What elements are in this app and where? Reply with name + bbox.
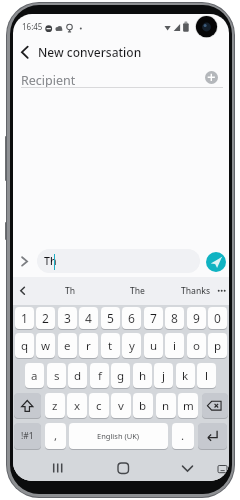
staticText: n: [162, 398, 170, 414]
button[interactable]: m: [178, 393, 198, 418]
staticText: u: [150, 338, 158, 354]
staticText: c: [96, 398, 102, 414]
staticText: Recipient: [21, 72, 76, 89]
button[interactable]: Th: [37, 249, 200, 273]
button[interactable]: o: [187, 333, 206, 358]
staticText: t: [108, 338, 113, 354]
button[interactable]: b: [133, 393, 153, 418]
staticText: x: [74, 398, 81, 414]
button[interactable]: d: [68, 363, 87, 388]
button[interactable]: z: [45, 393, 65, 418]
staticText: 9: [193, 310, 200, 326]
staticText: k: [182, 368, 189, 384]
staticText: q: [21, 338, 29, 354]
button[interactable]: u: [144, 333, 163, 358]
staticText: r: [86, 338, 91, 354]
button[interactable]: [202, 393, 228, 418]
staticText: .: [181, 428, 185, 444]
staticText: Th: [44, 254, 57, 268]
button[interactable]: 8: [165, 307, 184, 329]
button[interactable]: s: [47, 363, 66, 388]
staticText: New conversation: [38, 44, 142, 60]
button[interactable]: 0: [208, 307, 227, 329]
button[interactable]: g: [111, 363, 130, 388]
staticText: 8: [171, 310, 178, 326]
button[interactable]: f: [90, 363, 109, 388]
staticText: 5: [107, 310, 114, 326]
button[interactable]: k: [176, 363, 195, 388]
button[interactable]: y: [122, 333, 141, 358]
button[interactable]: p: [208, 333, 227, 358]
button[interactable]: .: [172, 423, 194, 449]
button[interactable]: c: [89, 393, 109, 418]
button[interactable]: j: [154, 363, 173, 388]
staticText: 1: [21, 310, 28, 326]
button[interactable]: 1: [15, 307, 34, 329]
button[interactable]: The: [97, 281, 177, 301]
staticText: z: [52, 398, 58, 414]
button[interactable]: 3: [58, 307, 77, 329]
staticText: o: [193, 338, 200, 354]
button[interactable]: Th: [30, 281, 110, 301]
staticText: d: [74, 368, 82, 384]
staticText: w: [41, 338, 51, 354]
staticText: 6: [128, 310, 135, 326]
button[interactable]: [69, 423, 168, 449]
button[interactable]: t: [101, 333, 120, 358]
button[interactable]: [46, 456, 74, 480]
button[interactable]: [206, 252, 226, 272]
button[interactable]: v: [111, 393, 131, 418]
button[interactable]: Thanks: [156, 281, 229, 301]
staticText: !#1: [21, 430, 34, 442]
button[interactable]: 6: [122, 307, 141, 329]
button[interactable]: 7: [144, 307, 163, 329]
staticText: Thanks: [181, 285, 211, 297]
button[interactable]: [198, 423, 227, 449]
button[interactable]: New conversation: [17, 43, 197, 60]
button[interactable]: 9: [187, 307, 206, 329]
button[interactable]: 4: [79, 307, 98, 329]
staticText: m: [183, 398, 194, 414]
button[interactable]: r: [79, 333, 98, 358]
staticText: s: [54, 368, 60, 384]
button[interactable]: w: [36, 333, 55, 358]
staticText: j: [162, 368, 165, 384]
button[interactable]: n: [156, 393, 176, 418]
button[interactable]: q: [15, 333, 34, 358]
staticText: 0: [214, 310, 221, 326]
staticText: 3: [64, 310, 71, 326]
staticText: 7: [150, 310, 157, 326]
staticText: 16:45: [22, 21, 43, 32]
button[interactable]: [109, 456, 137, 480]
button[interactable]: [14, 393, 41, 418]
button[interactable]: h: [133, 363, 152, 388]
staticText: i: [173, 338, 176, 354]
staticText: y: [129, 338, 135, 354]
staticText: ,: [54, 428, 58, 444]
button[interactable]: !#1: [14, 423, 41, 449]
staticText: English (UK): [97, 431, 140, 441]
staticText: 4: [85, 310, 92, 326]
button[interactable]: 5: [101, 307, 120, 329]
button[interactable]: l: [197, 363, 216, 388]
button[interactable]: x: [67, 393, 87, 418]
button[interactable]: [205, 71, 218, 84]
button[interactable]: e: [58, 333, 77, 358]
button[interactable]: 2: [36, 307, 55, 329]
staticText: Th: [65, 285, 76, 297]
button[interactable]: ,: [45, 423, 66, 449]
staticText: The: [130, 285, 145, 297]
staticText: b: [139, 398, 147, 414]
staticText: f: [98, 368, 102, 384]
staticText: p: [214, 338, 222, 354]
staticText: g: [117, 368, 125, 384]
button[interactable]: i: [165, 333, 184, 358]
staticText: 2: [42, 310, 49, 326]
staticText: a: [31, 368, 38, 384]
staticText: l: [205, 368, 208, 384]
staticText: h: [139, 368, 147, 384]
staticText: e: [64, 338, 71, 354]
button[interactable]: a: [25, 363, 44, 388]
button[interactable]: [174, 456, 202, 480]
staticText: v: [118, 398, 124, 414]
